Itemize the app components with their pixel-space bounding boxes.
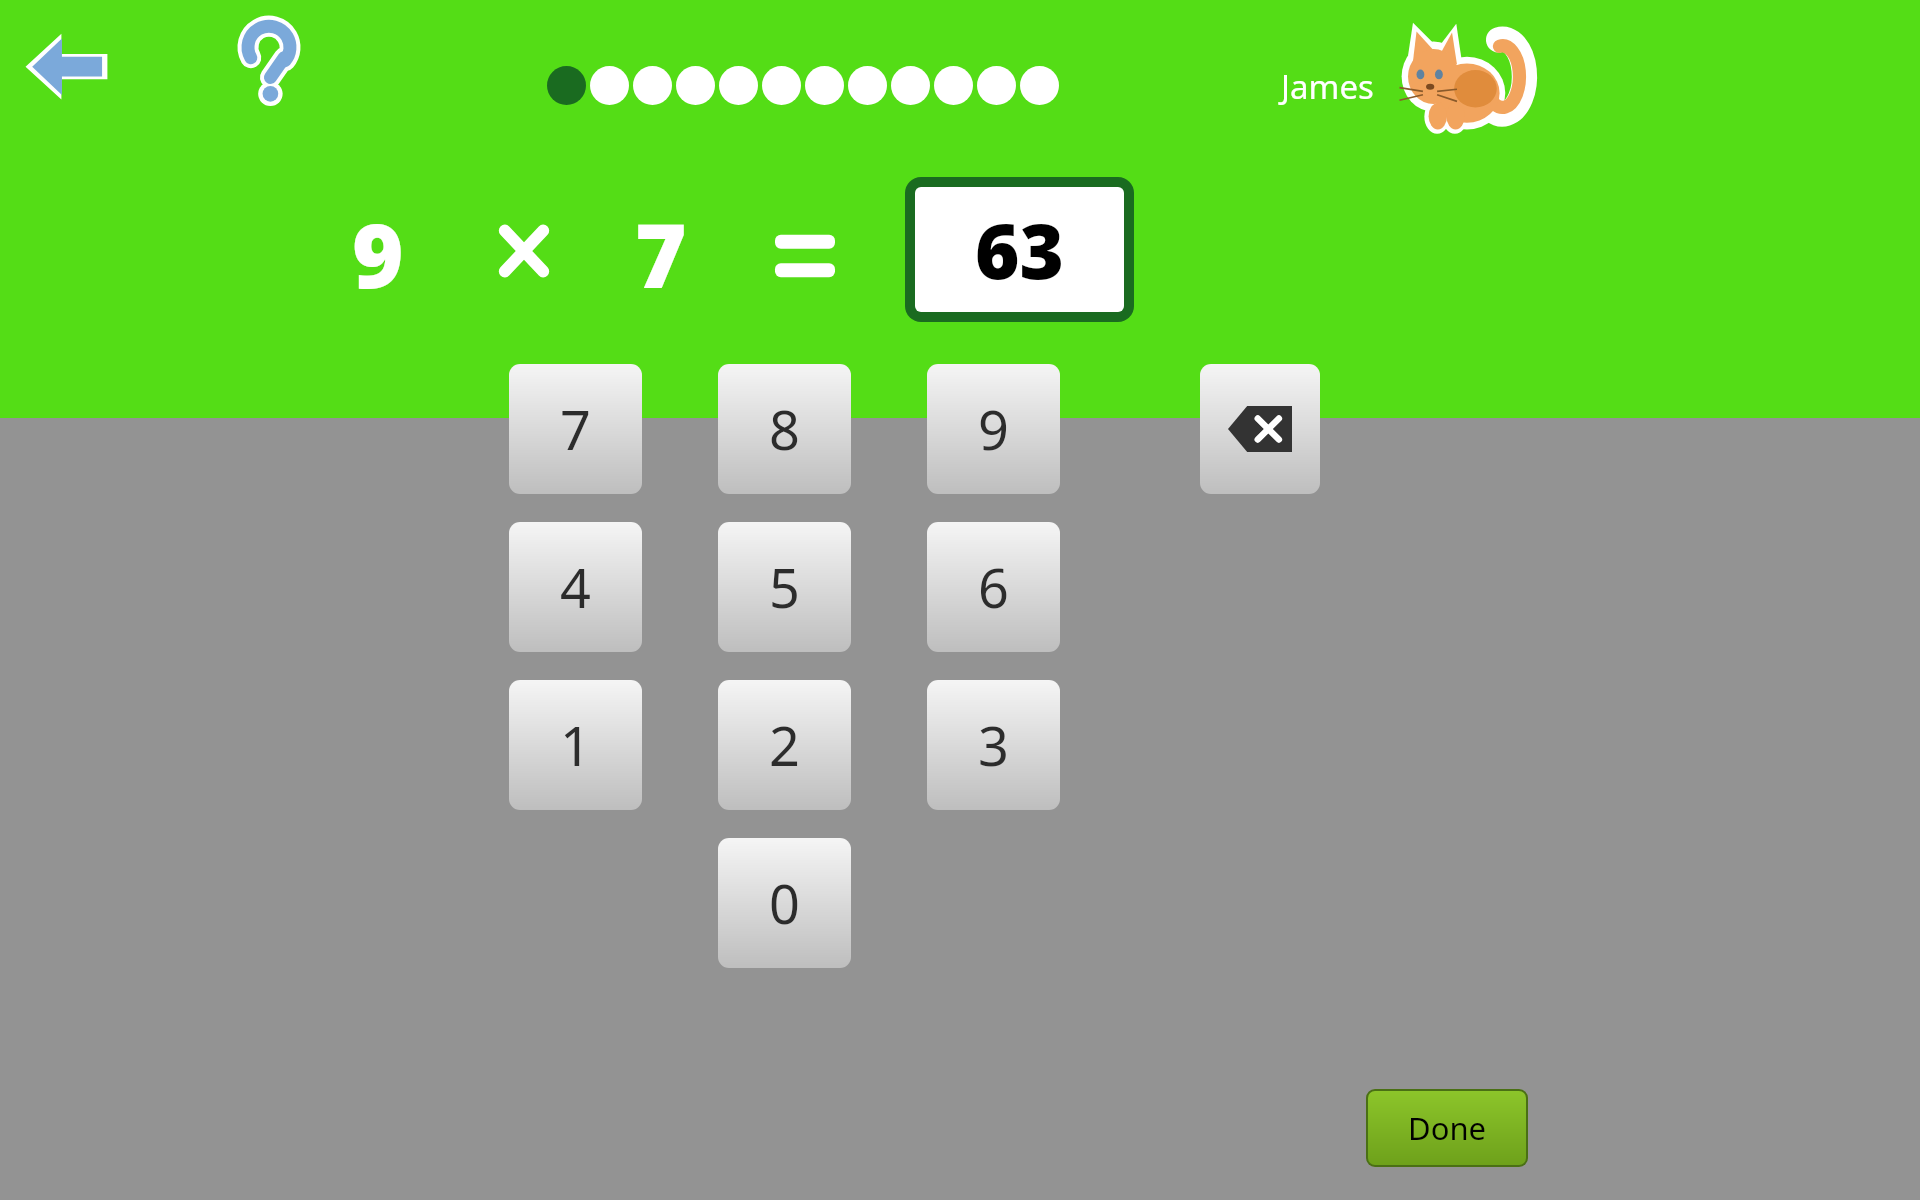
staticText: 63 (975, 198, 1065, 302)
button[interactable]: 8 (718, 364, 851, 494)
staticText: 9 (978, 392, 1009, 466)
button[interactable]: Done (1368, 1091, 1526, 1165)
staticText: 9 (352, 194, 404, 314)
staticText: James (1281, 64, 1374, 109)
button[interactable]: 63 (915, 187, 1124, 312)
staticText: 2 (769, 708, 800, 782)
staticText: 7 (635, 194, 687, 314)
staticText: Done (1408, 1107, 1487, 1149)
staticText: 3 (978, 708, 1009, 782)
button[interactable]: 5 (718, 522, 851, 652)
staticText: 8 (769, 392, 800, 466)
staticText: 7 (560, 392, 591, 466)
button[interactable]: 1 (509, 680, 642, 810)
button[interactable]: Help (234, 22, 304, 106)
button[interactable]: Back (20, 24, 112, 106)
button[interactable]: Backspace (1200, 364, 1320, 494)
button[interactable]: 7 (509, 364, 642, 494)
staticText: 5 (769, 550, 800, 624)
button[interactable]: 0 (718, 838, 851, 968)
staticText: 0 (769, 866, 800, 940)
button[interactable]: 4 (509, 522, 642, 652)
button[interactable]: Profile avatar (1386, 26, 1528, 136)
staticText: 6 (978, 550, 1009, 624)
button[interactable]: 9 (927, 364, 1060, 494)
staticText: 1 (560, 708, 591, 782)
staticText: 4 (560, 550, 591, 624)
button[interactable]: 6 (927, 522, 1060, 652)
button[interactable]: 3 (927, 680, 1060, 810)
button[interactable]: 2 (718, 680, 851, 810)
